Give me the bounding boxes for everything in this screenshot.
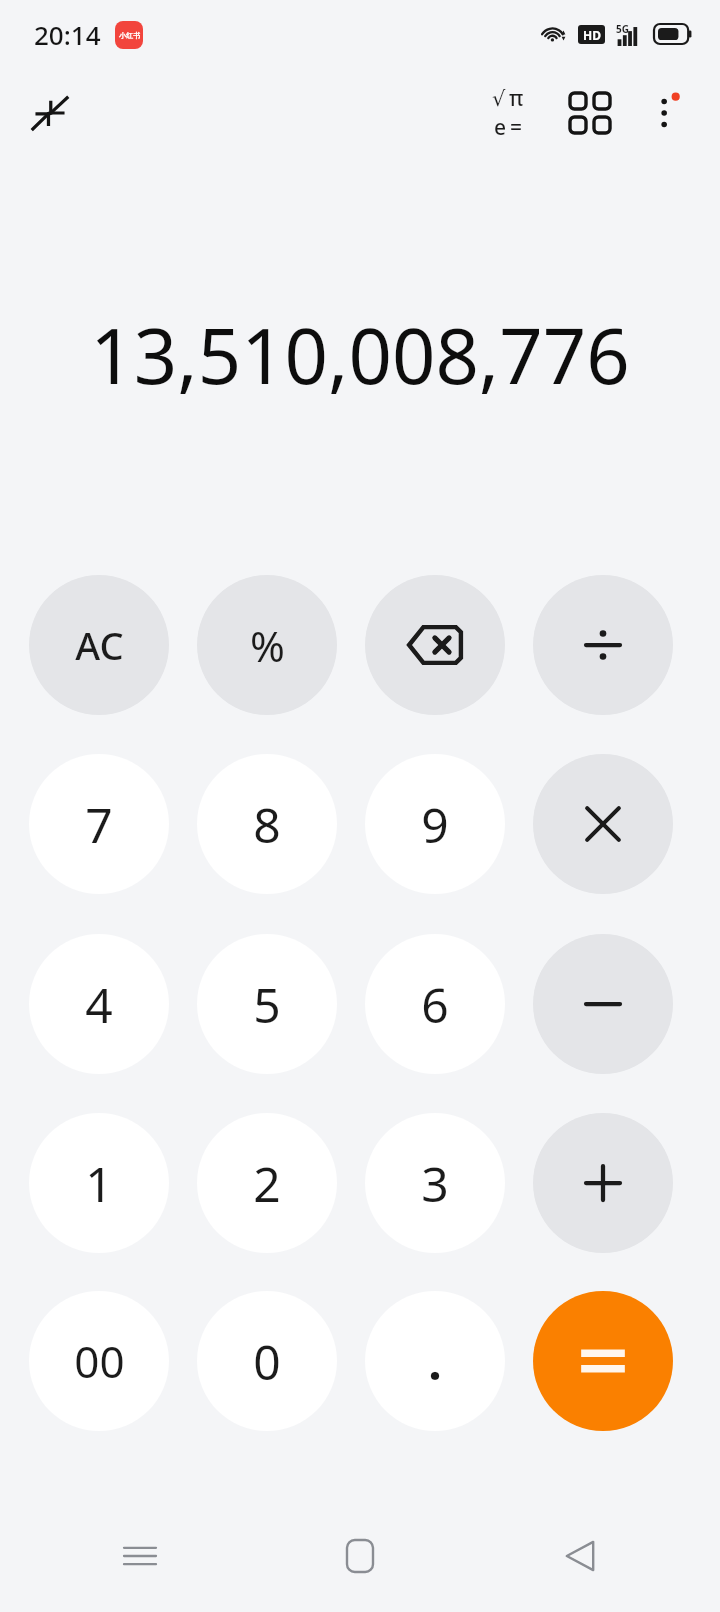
button[interactable]: 2 bbox=[197, 1113, 337, 1253]
staticText: √ bbox=[492, 87, 506, 111]
staticText: AC bbox=[75, 619, 124, 671]
button[interactable]: 00 bbox=[29, 1291, 169, 1431]
staticText: 3 bbox=[421, 1151, 449, 1216]
staticText: π bbox=[509, 84, 524, 113]
staticText: 6 bbox=[421, 972, 449, 1037]
button[interactable]: Unit converter bbox=[554, 77, 626, 149]
button[interactable]: Home bbox=[316, 1512, 404, 1600]
button[interactable]: Back bbox=[536, 1512, 624, 1600]
button[interactable]: % bbox=[197, 575, 337, 715]
staticText: 20:14 bbox=[34, 17, 101, 52]
button[interactable]: Backspace bbox=[365, 575, 505, 715]
button[interactable]: 5 bbox=[197, 934, 337, 1074]
staticText: 8 bbox=[253, 792, 281, 857]
button[interactable]: . bbox=[365, 1291, 505, 1431]
button[interactable]: Equals bbox=[533, 1291, 673, 1431]
staticText: 1 bbox=[85, 1151, 113, 1216]
staticText: HD bbox=[583, 27, 601, 43]
button[interactable]: Recents bbox=[96, 1512, 184, 1600]
button[interactable]: Scientific mode bbox=[470, 75, 546, 151]
button[interactable]: 7 bbox=[29, 754, 169, 894]
staticText: 13,510,008,776 bbox=[90, 303, 630, 407]
button[interactable]: Collapse bbox=[14, 77, 86, 149]
staticText: 5 bbox=[253, 972, 281, 1037]
staticText: . bbox=[428, 1329, 442, 1394]
button[interactable]: 3 bbox=[365, 1113, 505, 1253]
staticText: 4 bbox=[85, 972, 113, 1037]
button[interactable]: 1 bbox=[29, 1113, 169, 1253]
staticText: 小红书 bbox=[119, 31, 140, 40]
button[interactable]: Divide bbox=[533, 575, 673, 715]
button[interactable]: 0 bbox=[197, 1291, 337, 1431]
staticText: e bbox=[494, 113, 507, 142]
staticText: 2 bbox=[253, 1151, 281, 1216]
button[interactable]: 6 bbox=[365, 934, 505, 1074]
button[interactable]: AC bbox=[29, 575, 169, 715]
staticText: 7 bbox=[85, 792, 113, 857]
button[interactable]: 9 bbox=[365, 754, 505, 894]
staticText: % bbox=[250, 617, 285, 674]
staticText: = bbox=[510, 113, 523, 142]
button[interactable]: More options bbox=[632, 77, 704, 149]
button[interactable]: 4 bbox=[29, 934, 169, 1074]
button[interactable]: 8 bbox=[197, 754, 337, 894]
staticText: 0 bbox=[253, 1329, 281, 1394]
button[interactable]: Multiply bbox=[533, 754, 673, 894]
staticText: 00 bbox=[74, 1331, 125, 1391]
staticText: 5G bbox=[616, 22, 629, 36]
button[interactable]: Add bbox=[533, 1113, 673, 1253]
staticText: 9 bbox=[421, 792, 449, 857]
button[interactable]: Subtract bbox=[533, 934, 673, 1074]
